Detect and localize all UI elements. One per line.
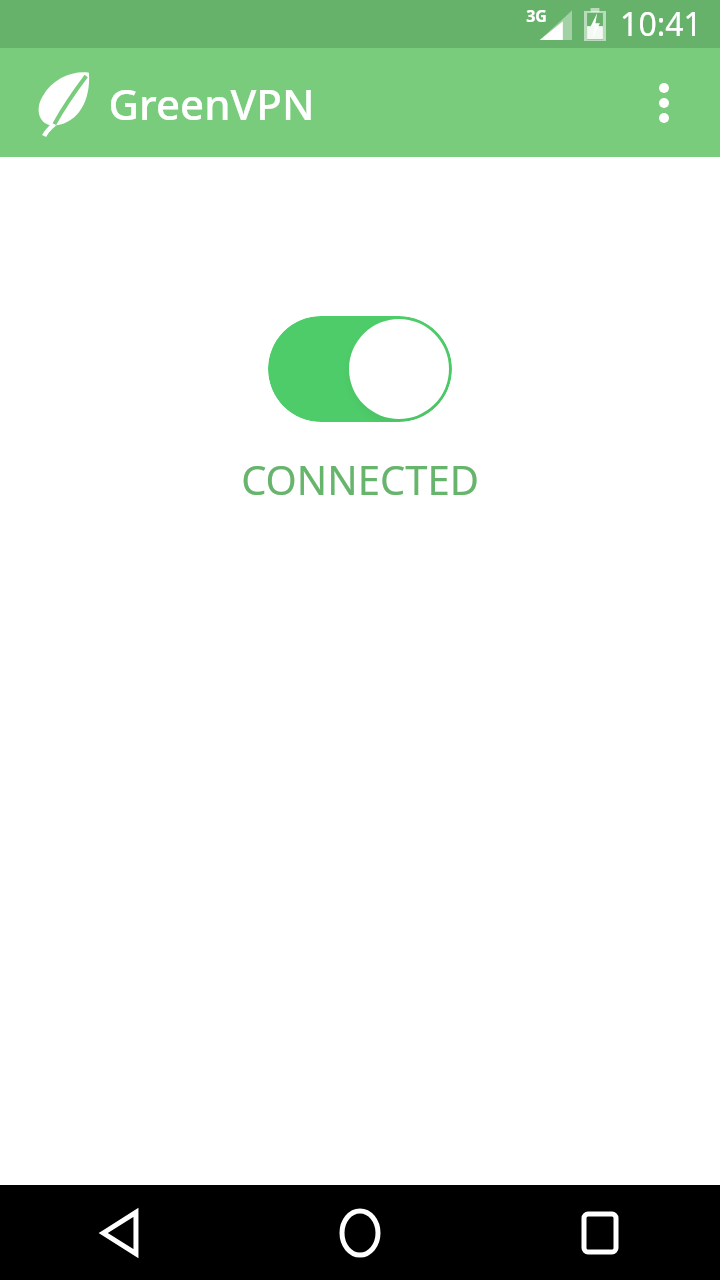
button[interactable]: VPN connection toggle, connected xyxy=(268,316,452,422)
staticText: CONNECTED xyxy=(241,452,479,506)
staticText: 3G xyxy=(526,5,547,27)
button[interactable]: More options xyxy=(628,67,700,139)
button[interactable]: Back xyxy=(0,1185,240,1280)
staticText: GreenVPN xyxy=(108,75,315,132)
staticText: 10:41 xyxy=(620,2,702,46)
button[interactable]: Home xyxy=(240,1185,480,1280)
button[interactable]: Recent apps xyxy=(480,1185,720,1280)
